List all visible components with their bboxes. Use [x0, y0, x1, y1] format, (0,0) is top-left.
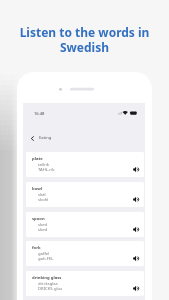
button[interactable]: Play pronunciation	[131, 224, 141, 234]
button[interactable]: Play pronunciation	[131, 194, 141, 204]
staticText: tallrik	[38, 162, 50, 168]
staticText: sked	[38, 227, 48, 233]
button[interactable]: Play pronunciation	[131, 253, 141, 263]
staticText: dricksglas	[38, 281, 58, 287]
staticText: Eating	[39, 135, 52, 141]
staticText: gah-FEL	[38, 256, 54, 262]
staticText: spoon	[32, 216, 45, 222]
staticText: DRICKS-glus	[38, 286, 63, 292]
staticText: fork	[32, 245, 41, 251]
button[interactable]: Play pronunciation	[131, 283, 141, 293]
button[interactable]: plate	[26, 152, 144, 177]
button[interactable]: drinking glass	[26, 271, 144, 296]
staticText: sked	[38, 222, 48, 228]
staticText: gaffel	[38, 251, 50, 257]
button[interactable]: spoon	[26, 212, 144, 237]
staticText: Listen to the words in Swedish	[8, 24, 161, 55]
staticText: drinking glass	[32, 275, 62, 281]
staticText: 16:48	[34, 111, 45, 116]
button[interactable]: Play pronunciation	[131, 164, 141, 174]
staticText: skohl	[38, 197, 49, 203]
button[interactable]: fork	[26, 241, 144, 266]
button[interactable]: bowl	[26, 182, 144, 207]
staticText: skål	[38, 192, 46, 198]
staticText: TAHL-rik	[38, 167, 55, 173]
button[interactable]: Eating	[23, 131, 145, 145]
staticText: bowl	[32, 186, 43, 192]
staticText: plate	[32, 156, 43, 162]
